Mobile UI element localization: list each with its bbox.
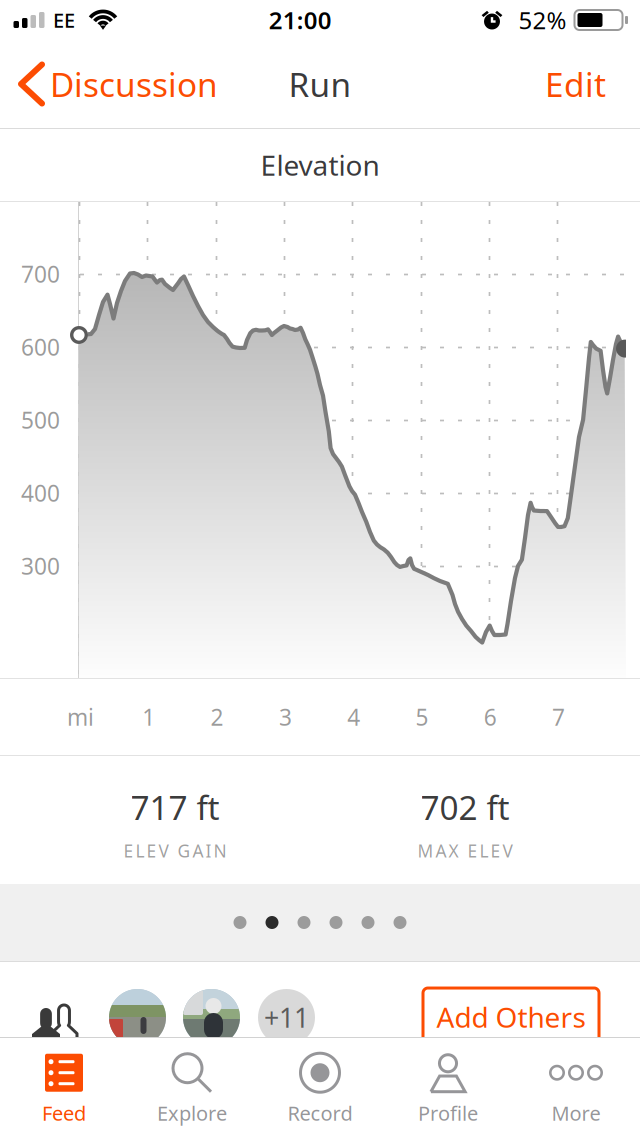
staticText: 5 xyxy=(415,702,428,732)
staticText: 1 xyxy=(142,702,155,732)
staticText: 2 xyxy=(211,702,224,732)
staticText: mi xyxy=(67,702,94,732)
staticText: 400 xyxy=(21,478,60,508)
button[interactable]: Edit xyxy=(523,48,640,120)
button[interactable]: More xyxy=(512,1040,640,1134)
staticText: 600 xyxy=(21,332,60,362)
button[interactable]: Record xyxy=(256,1040,384,1134)
staticText: 7 xyxy=(552,702,565,732)
button[interactable]: Explore xyxy=(128,1040,256,1134)
button[interactable]: Add Others xyxy=(423,988,599,1046)
staticText: 3 xyxy=(279,702,292,732)
staticText: ELEV GAIN xyxy=(123,839,226,862)
staticText: 500 xyxy=(21,405,60,435)
staticText: Record xyxy=(287,1100,352,1126)
staticText: MAX ELEV xyxy=(417,839,512,862)
button[interactable]: Profile xyxy=(384,1040,512,1134)
staticText: 21:00 xyxy=(269,4,332,36)
staticText: +11 xyxy=(264,1000,309,1035)
button[interactable]: Discussion xyxy=(0,48,218,120)
button[interactable]: Feed xyxy=(0,1040,128,1134)
staticText: Edit xyxy=(545,62,606,106)
staticText: EE xyxy=(53,7,75,33)
staticText: Feed xyxy=(42,1100,86,1126)
staticText: 6 xyxy=(484,702,497,732)
staticText: 52% xyxy=(518,4,566,36)
staticText: Run xyxy=(288,62,351,106)
staticText: 4 xyxy=(347,702,360,732)
staticText: More xyxy=(551,1100,600,1126)
staticText: 700 xyxy=(21,259,60,289)
staticText: Profile xyxy=(418,1100,478,1126)
staticText: Add Others xyxy=(436,998,585,1036)
staticText: 300 xyxy=(21,551,60,581)
staticText: Elevation xyxy=(260,146,379,184)
staticText: Discussion xyxy=(50,62,218,106)
staticText: 717 ft xyxy=(130,785,219,829)
staticText: Explore xyxy=(157,1100,227,1126)
staticText: 702 ft xyxy=(420,785,509,829)
